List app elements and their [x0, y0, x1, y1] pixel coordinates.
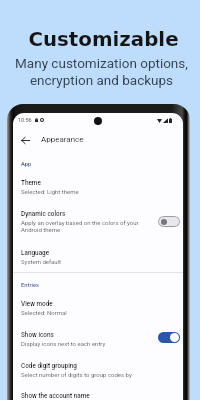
staticText: Selected: Light theme	[21, 188, 79, 195]
button[interactable]: Theme	[13, 179, 183, 195]
button[interactable]: Code digit grouping	[13, 362, 183, 378]
staticText: Dynamic colors	[21, 210, 66, 218]
staticText: Select number of digits to group codes b…	[21, 371, 132, 378]
staticText: Theme	[21, 179, 41, 187]
button[interactable]: Enabled toggle	[158, 332, 180, 343]
staticText: App	[21, 161, 32, 168]
staticText: Language	[21, 249, 50, 257]
staticText: Show icons	[21, 331, 54, 339]
button[interactable]: Dynamic colors	[13, 210, 183, 234]
staticText: 10:56	[18, 117, 32, 123]
staticText: Display icons next to each entry	[21, 340, 106, 347]
staticText: System default	[21, 258, 62, 265]
button[interactable]: Disabled toggle	[158, 216, 180, 227]
button[interactable]: Back	[17, 132, 33, 148]
staticText: Entries	[21, 282, 40, 289]
button[interactable]: Show icons	[13, 331, 183, 347]
staticText: Selected: Normal	[21, 309, 67, 316]
staticText: Apply an overlay based on the colors of …	[21, 219, 139, 234]
staticText: Customizable	[28, 28, 179, 51]
staticText: Code digit grouping	[21, 362, 77, 370]
button[interactable]: Language	[13, 249, 183, 265]
staticText: Appearance	[41, 135, 84, 144]
button[interactable]: Show the account name	[13, 392, 183, 400]
staticText: View mode	[21, 300, 53, 308]
button[interactable]: View mode	[13, 300, 183, 316]
staticText: Many customization options, encryption a…	[15, 55, 188, 88]
staticText: Show the account name	[21, 392, 90, 400]
